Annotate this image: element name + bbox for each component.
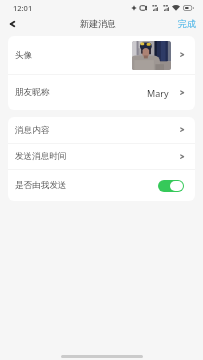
button[interactable]: 头像: [8, 36, 195, 74]
button[interactable]: 完成: [169, 16, 203, 31]
staticText: 完成: [178, 18, 196, 29]
button[interactable]: 返回: [0, 16, 25, 31]
button[interactable]: 朋友昵称: [8, 75, 195, 110]
button[interactable]: 是否由我发送: [158, 180, 184, 192]
staticText: 发送消息时间: [15, 151, 67, 162]
staticText: 是否由我发送: [15, 180, 67, 191]
staticText: 朋友昵称: [15, 87, 50, 98]
staticText: 新建消息: [80, 18, 116, 29]
button[interactable]: 是否由我发送: [8, 170, 195, 201]
staticText: 12:01: [13, 3, 33, 13]
staticText: 消息内容: [15, 125, 50, 136]
button[interactable]: 消息内容: [8, 117, 195, 143]
staticText: 头像: [15, 50, 33, 61]
button[interactable]: 发送消息时间: [8, 144, 195, 169]
staticText: Mary: [147, 87, 169, 99]
